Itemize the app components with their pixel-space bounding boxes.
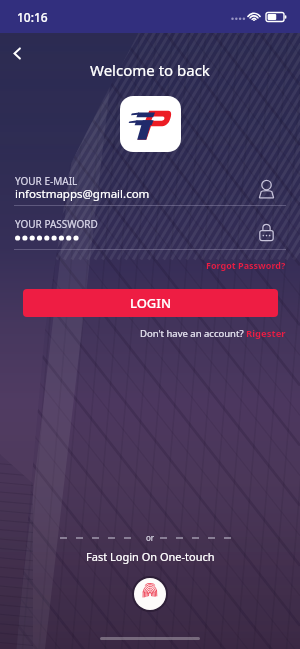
staticText: Rigester bbox=[246, 327, 286, 340]
staticText: Forgot Password? bbox=[206, 259, 286, 271]
button[interactable]: LOGIN bbox=[23, 289, 278, 317]
button[interactable]: Rigester bbox=[246, 327, 286, 340]
staticText: 10:16 bbox=[17, 9, 48, 25]
button[interactable]: Back bbox=[2, 38, 32, 68]
staticText: YOUR PASSWORD bbox=[15, 217, 98, 231]
staticText: Don't have an account? bbox=[140, 327, 246, 340]
staticText: Fast Login On One-touch bbox=[86, 549, 215, 564]
staticText: or bbox=[146, 532, 155, 543]
staticText: Welcome to back bbox=[90, 60, 210, 80]
staticText: infostmapps@gmail.com bbox=[15, 186, 150, 202]
staticText: LOGIN bbox=[130, 294, 172, 312]
button[interactable]: Fingerprint login bbox=[132, 576, 168, 612]
button[interactable]: Forgot Password? bbox=[206, 257, 300, 273]
staticText: YOUR E-MAIL bbox=[15, 174, 78, 188]
